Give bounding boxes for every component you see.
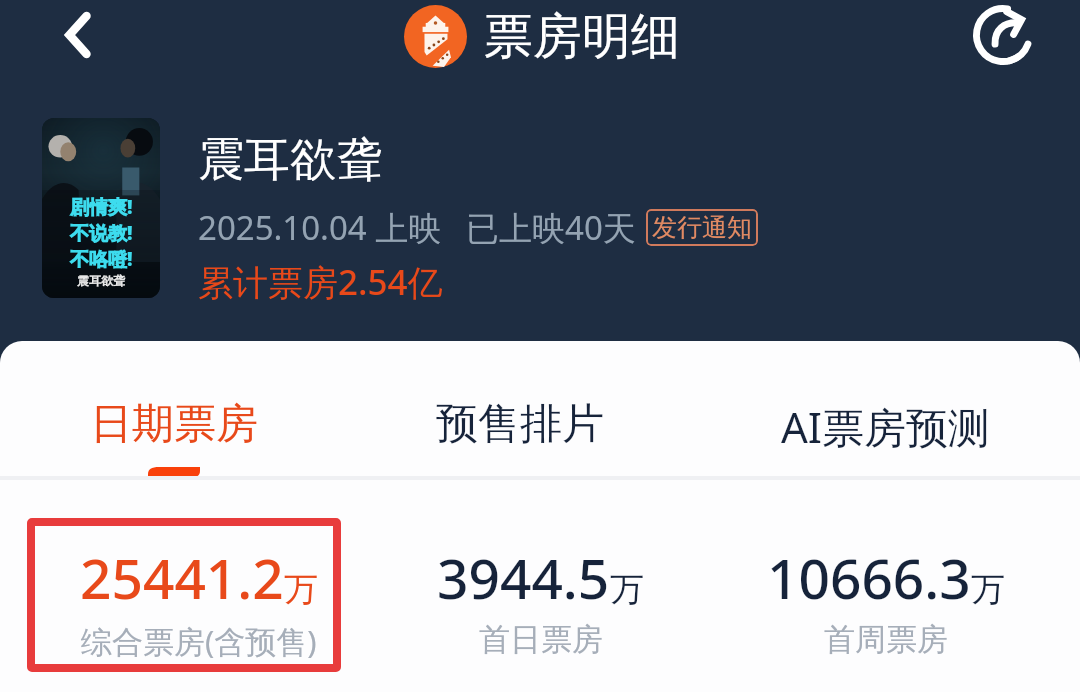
button[interactable]: 发行通知 — [652, 212, 752, 243]
staticText: AI票房预测 — [781, 398, 991, 455]
staticText: 25441.2 — [80, 540, 284, 615]
staticText: 2025.10.04 上映 — [198, 205, 442, 250]
staticText: 万 — [284, 568, 318, 611]
staticText: 3944.5 — [437, 540, 610, 615]
button[interactable]: 剧情爽! — [42, 118, 160, 298]
button[interactable]: 日期票房 — [0, 341, 351, 478]
staticText: 累计票房2.54亿 — [198, 258, 443, 306]
button[interactable]: Back — [44, 1, 112, 69]
button[interactable]: 10666.3 — [720, 480, 1080, 692]
staticText: 预售排片 — [436, 398, 604, 451]
button[interactable]: 3944.5 — [360, 480, 720, 692]
staticText: 综合票房(含预售) — [81, 620, 317, 662]
staticText: 10666.3 — [767, 540, 971, 615]
staticText: 不说教! — [70, 220, 133, 246]
button[interactable]: 25441.2 — [0, 480, 360, 692]
button[interactable]: AI票房预测 — [730, 341, 1042, 478]
staticText: 不咯噔! — [70, 246, 133, 272]
staticText: 剧情爽! — [70, 194, 133, 220]
staticText: 发行通知 — [652, 212, 752, 243]
button[interactable]: Share — [969, 1, 1037, 69]
staticText: 万 — [971, 568, 1005, 611]
staticText: 日期票房 — [90, 398, 258, 451]
staticText: 震耳欲聋 — [77, 273, 125, 288]
staticText: 万 — [610, 568, 644, 611]
staticText: 票房明细 — [484, 6, 680, 68]
staticText: 首日票房 — [479, 620, 603, 659]
staticText: 震耳欲聋 — [198, 131, 382, 189]
button[interactable]: 预售排片 — [360, 341, 680, 478]
staticText: 已上映40天 — [466, 205, 636, 250]
staticText: 首周票房 — [824, 620, 948, 659]
